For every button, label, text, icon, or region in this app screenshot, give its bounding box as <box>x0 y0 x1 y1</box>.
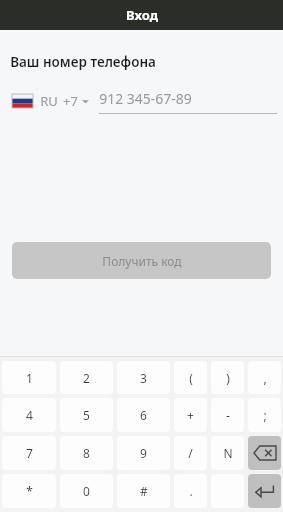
staticText: 8 <box>83 445 90 461</box>
button[interactable]: / <box>174 436 207 470</box>
button[interactable]: + <box>174 398 207 432</box>
button[interactable]: ; <box>248 398 281 432</box>
staticText: / <box>188 445 193 461</box>
staticText: N <box>223 445 233 461</box>
button[interactable]: 2 <box>60 361 113 394</box>
button[interactable]: Backspace <box>248 436 281 470</box>
button[interactable]: - <box>211 398 244 432</box>
staticText: 4 <box>26 407 33 423</box>
staticText: + <box>187 407 194 423</box>
button[interactable]: 8 <box>60 436 113 470</box>
staticText: 1 <box>26 370 33 386</box>
button[interactable]: 1 <box>2 361 56 394</box>
staticText: ; <box>263 407 267 423</box>
staticText: . <box>189 483 193 499</box>
button[interactable]: 912 345-67-89 <box>99 89 277 114</box>
button[interactable]: 0 <box>60 474 113 508</box>
button[interactable]: ) <box>211 361 244 394</box>
button[interactable]: * <box>2 474 56 508</box>
staticText: RU <box>40 92 58 110</box>
staticText: 9 <box>140 445 147 461</box>
staticText: 5 <box>83 407 90 423</box>
button[interactable]: # <box>117 474 170 508</box>
staticText: ( <box>189 370 193 386</box>
staticText: * <box>26 483 33 499</box>
staticText: Получить код <box>102 253 182 269</box>
staticText: 7 <box>26 445 33 461</box>
button[interactable]: 7 <box>2 436 56 470</box>
staticText: - <box>226 407 230 423</box>
staticText: ) <box>226 370 230 386</box>
button[interactable]: N <box>211 436 244 470</box>
button[interactable]: ( <box>174 361 207 394</box>
button[interactable]: 3 <box>117 361 170 394</box>
staticText: Ваш номер телефона <box>10 53 156 71</box>
staticText: +7 <box>63 92 78 110</box>
button[interactable]: 5 <box>60 398 113 432</box>
staticText: 912 345-67-89 <box>99 89 192 108</box>
button[interactable]: Enter <box>248 474 281 508</box>
button[interactable]: 6 <box>117 398 170 432</box>
button[interactable]: 4 <box>2 398 56 432</box>
staticText: Вход <box>126 6 158 24</box>
button[interactable]: 9 <box>117 436 170 470</box>
staticText: # <box>140 483 148 499</box>
staticText: 6 <box>140 407 147 423</box>
button[interactable]: RU <box>12 88 89 114</box>
staticText: 3 <box>140 370 147 386</box>
button[interactable]: Получить код <box>12 242 271 279</box>
staticText: 2 <box>83 370 90 386</box>
staticText: 0 <box>83 483 90 499</box>
button[interactable]: , <box>248 361 281 394</box>
staticText: , <box>263 370 267 386</box>
button[interactable]: . <box>174 474 207 508</box>
